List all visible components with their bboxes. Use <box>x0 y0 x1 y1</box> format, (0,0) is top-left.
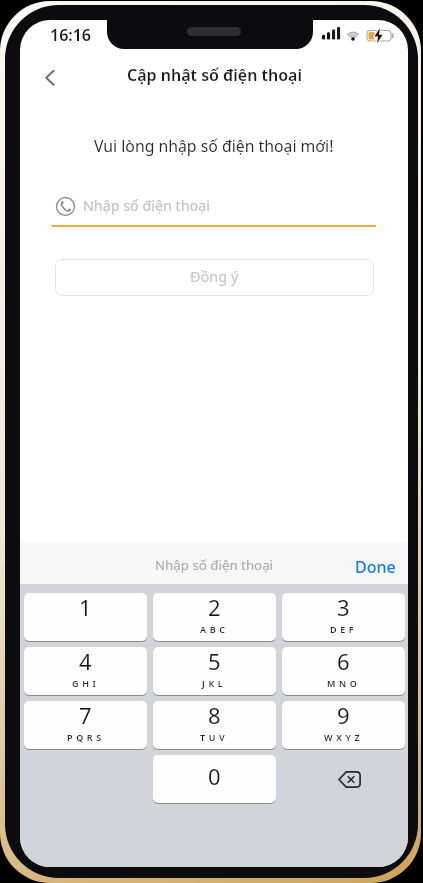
button[interactable]: 3 <box>282 593 405 642</box>
staticText: 5 <box>208 646 221 670</box>
button[interactable]: 4 <box>24 647 147 696</box>
staticText: 3 <box>337 592 350 616</box>
staticText: 6 <box>337 646 350 670</box>
staticText: Đồng ý <box>190 266 239 286</box>
button[interactable]: 0 <box>153 755 276 804</box>
staticText: GHI <box>72 677 100 689</box>
staticText: Vui lòng nhập số điện thoại mới! <box>94 135 334 157</box>
button[interactable]: 5 <box>153 647 276 696</box>
staticText: 2 <box>208 592 221 616</box>
staticText: 0 <box>208 761 221 791</box>
button[interactable]: 2 <box>153 593 276 642</box>
staticText: PQRS <box>67 731 105 743</box>
button[interactable]: 1 <box>24 593 147 642</box>
staticText: 4 <box>79 646 92 670</box>
staticText: 8 <box>208 700 221 724</box>
staticText: DEF <box>330 623 358 635</box>
staticText: Done <box>355 556 396 578</box>
staticText: 1 <box>79 592 92 616</box>
staticText: 16:16 <box>50 24 92 43</box>
button[interactable] <box>329 765 369 793</box>
button[interactable]: 9 <box>282 701 405 750</box>
staticText: MNO <box>327 677 361 689</box>
button[interactable]: 8 <box>153 701 276 750</box>
button[interactable]: Done <box>345 542 405 584</box>
button[interactable]: Nhập số điện thoại <box>83 196 210 215</box>
staticText: TUV <box>200 731 229 743</box>
staticText: 7 <box>79 700 92 724</box>
staticText: Cập nhật số điện thoại <box>127 64 302 86</box>
button[interactable]: 6 <box>282 647 405 696</box>
staticText: JKL <box>202 677 227 689</box>
staticText: Nhập số điện thoại <box>155 556 274 574</box>
button[interactable]: Đồng ý <box>55 259 374 296</box>
staticText: Nhập số điện thoại <box>83 196 210 215</box>
staticText: ABC <box>200 623 229 635</box>
button[interactable] <box>38 65 62 91</box>
button[interactable]: 7 <box>24 701 147 750</box>
staticText: WXYZ <box>324 731 364 743</box>
staticText: 9 <box>337 700 350 724</box>
